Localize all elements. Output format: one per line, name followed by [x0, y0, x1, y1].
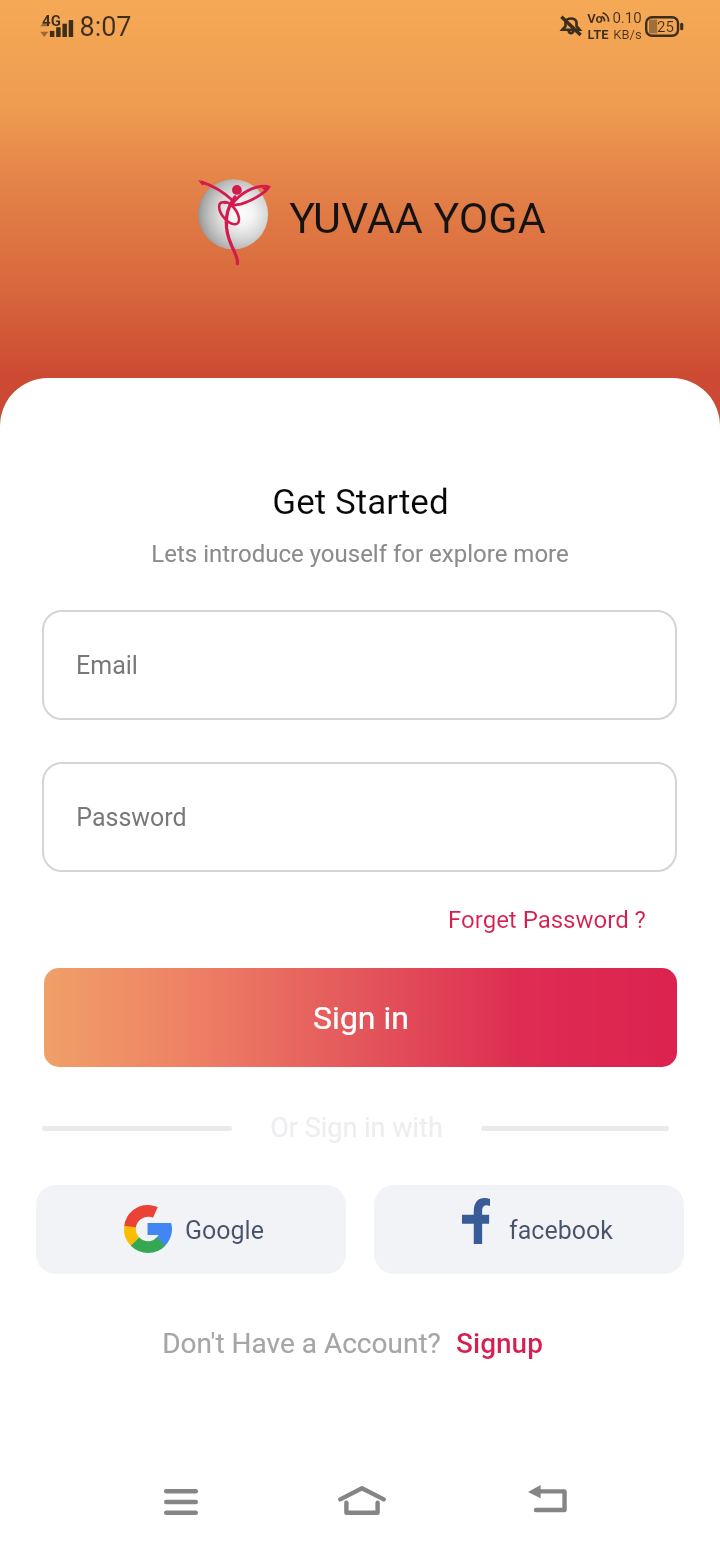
staticText: Email	[76, 651, 138, 680]
staticText: 0.10	[612, 9, 642, 27]
staticText: facebook	[509, 1216, 613, 1245]
button[interactable]: Back	[512, 1463, 585, 1536]
staticText: Sign in	[313, 999, 409, 1037]
staticText: Or Sign in with	[270, 1112, 443, 1144]
button[interactable]: Recent apps	[144, 1465, 217, 1538]
staticText: Vo	[587, 11, 603, 26]
staticText: Lets introduce youself for explore more	[151, 540, 569, 568]
staticText: Password	[76, 803, 187, 832]
staticText: Forget Password ?	[448, 906, 646, 934]
staticText: 25	[657, 18, 674, 36]
staticText: Don't Have a Account?	[162, 1327, 441, 1360]
button[interactable]: Password	[42, 762, 677, 872]
button[interactable]: Email	[42, 610, 677, 720]
button[interactable]: Signup	[456, 1327, 543, 1360]
staticText: Google	[185, 1216, 264, 1245]
staticText: KB/s	[613, 27, 642, 42]
staticText: Signup	[456, 1327, 543, 1360]
button[interactable]: Google	[36, 1185, 346, 1274]
staticText: YUVAA YOGA	[289, 193, 546, 243]
staticText: 8:07	[79, 11, 132, 43]
staticText: 4G	[42, 12, 61, 30]
button[interactable]: Sign in	[44, 968, 677, 1067]
button[interactable]: facebook	[374, 1185, 684, 1274]
button[interactable]: Home	[325, 1464, 398, 1537]
staticText: Get Started	[272, 482, 449, 523]
staticText: LTE	[587, 27, 609, 42]
button[interactable]: Forget Password ?	[448, 906, 646, 934]
